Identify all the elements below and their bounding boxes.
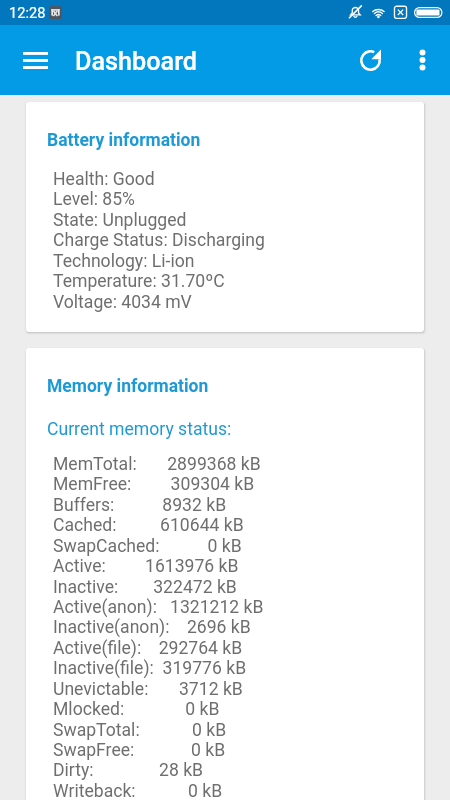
staticText: SwapFree: 0 kB: [53, 740, 226, 761]
staticText: SwapTotal: 0 kB: [53, 720, 227, 741]
staticText: SwapCached: 0 kB: [53, 536, 242, 557]
staticText: Current memory status:: [47, 419, 232, 440]
staticText: Buffers: 8932 kB: [53, 495, 227, 516]
staticText: MemTotal: 2899368 kB: [53, 454, 261, 475]
staticText: Temperature: 31.70ºC: [53, 271, 225, 292]
staticText: Active: 1613976 kB: [53, 556, 239, 577]
staticText: Battery information: [47, 130, 201, 151]
staticText: Technology: Li-ion: [53, 251, 195, 272]
button[interactable]: Refresh: [346, 36, 394, 84]
staticText: Active(anon): 1321212 kB: [53, 597, 264, 618]
staticText: Dirty: 28 kB: [53, 760, 204, 781]
staticText: Cached: 610644 kB: [53, 515, 244, 536]
button[interactable]: Open navigation drawer: [11, 36, 59, 84]
staticText: Active(file): 292764 kB: [53, 638, 243, 659]
staticText: State: Unplugged: [53, 210, 187, 231]
staticText: Inactive(anon): 2696 kB: [53, 617, 251, 638]
button[interactable]: More options: [398, 36, 446, 84]
staticText: Memory information: [47, 376, 209, 397]
staticText: Charge Status: Discharging: [53, 230, 265, 251]
staticText: Voltage: 4034 mV: [53, 292, 192, 313]
staticText: Level: 85%: [53, 189, 135, 210]
staticText: Inactive(file): 319776 kB: [53, 658, 247, 679]
staticText: 12:28: [9, 4, 46, 21]
staticText: Unevictable: 3712 kB: [53, 679, 243, 700]
staticText: Writeback: 0 kB: [53, 781, 223, 800]
staticText: Health: Good: [53, 169, 155, 190]
staticText: MemFree: 309304 kB: [53, 474, 255, 495]
staticText: Mlocked: 0 kB: [53, 699, 220, 720]
staticText: Inactive: 322472 kB: [53, 577, 237, 598]
staticText: Dashboard: [75, 47, 198, 77]
